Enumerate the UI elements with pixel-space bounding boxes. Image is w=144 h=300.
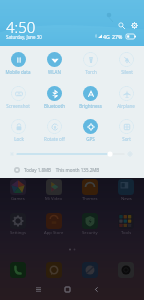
staticText: Tools — [121, 230, 132, 235]
staticText: News — [121, 196, 132, 201]
button[interactable]: Search — [116, 20, 127, 31]
button[interactable]: Settings — [0, 213, 36, 235]
button[interactable]: Security — [72, 213, 108, 235]
button[interactable]: News — [108, 179, 144, 201]
button[interactable]: WLAN — [36, 52, 72, 76]
button[interactable]: Silent — [108, 52, 144, 76]
button[interactable]: Sort — [108, 119, 144, 143]
button[interactable]: Messaging — [46, 262, 62, 278]
button[interactable]: Browser — [82, 262, 98, 278]
staticText: Torch — [85, 69, 97, 75]
staticText: Saturday, June 30 — [6, 34, 42, 40]
button[interactable]: Brightness slider — [0, 148, 144, 160]
button[interactable]: Mobile data — [0, 52, 36, 76]
button[interactable]: Screenshot — [0, 86, 36, 110]
button[interactable]: Mi Video — [36, 179, 72, 201]
button[interactable]: Brightness — [72, 86, 108, 110]
button[interactable]: Games — [0, 179, 36, 201]
button[interactable]: Bluetooth — [36, 86, 72, 110]
staticText: GPS — [86, 136, 95, 142]
button[interactable]: Back — [89, 282, 103, 296]
staticText: 27% — [112, 33, 123, 40]
button[interactable]: Torch — [72, 52, 108, 76]
button[interactable]: Camera — [118, 262, 134, 278]
staticText: Games — [11, 196, 25, 201]
button[interactable]: App Store — [36, 213, 72, 235]
button[interactable]: Lock — [0, 119, 36, 143]
staticText: Mi Video — [45, 196, 63, 201]
staticText: WLAN — [48, 69, 61, 75]
staticText: Silent — [121, 69, 133, 75]
button[interactable]: Themes — [72, 179, 108, 201]
staticText: 4G — [103, 33, 110, 40]
staticText: Sort — [122, 136, 131, 142]
button[interactable]: Rotate off — [36, 119, 72, 143]
staticText: Themes — [82, 196, 98, 201]
button[interactable]: Airplane — [108, 86, 144, 110]
staticText: Lock — [14, 136, 24, 142]
staticText: Today 1.8MB This month 135.2MB — [24, 167, 100, 173]
staticText: Settings — [10, 230, 26, 235]
button[interactable]: Recents — [31, 282, 45, 296]
staticText: Brightness — [79, 103, 102, 109]
staticText: Mobile data — [5, 69, 31, 75]
button[interactable]: Today 1.8MB This month 135.2MB — [0, 165, 144, 175]
button[interactable]: Phone — [10, 262, 26, 278]
button[interactable]: Settings — [129, 20, 140, 31]
button[interactable]: GPS — [72, 119, 108, 143]
staticText: Airplane — [117, 103, 135, 109]
button[interactable]: Home — [60, 282, 74, 296]
button[interactable]: Tools — [108, 213, 144, 235]
staticText: Bluetooth — [44, 103, 65, 109]
staticText: App Store — [44, 230, 64, 235]
staticText: 4:50 — [6, 17, 36, 37]
staticText: Screenshot — [6, 103, 30, 109]
staticText: Rotate off — [44, 136, 65, 142]
staticText: Security — [82, 230, 98, 235]
